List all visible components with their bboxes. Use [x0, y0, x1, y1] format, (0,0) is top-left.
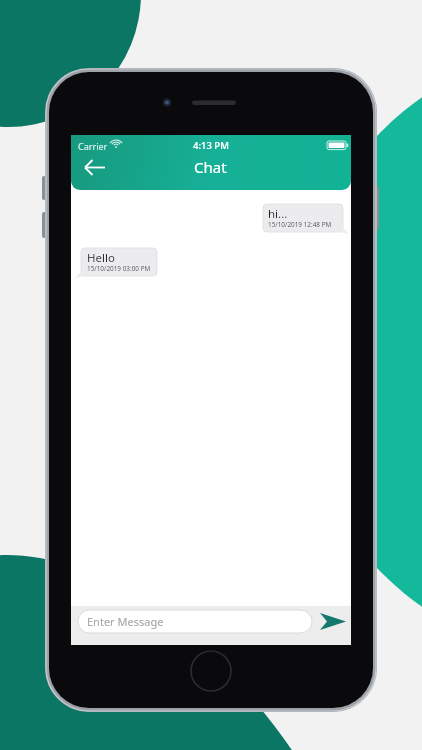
staticText: Carrier	[78, 140, 108, 152]
button[interactable]: Send	[314, 608, 350, 636]
staticText: hi...	[268, 206, 288, 222]
staticText: 15/10/2019 03:00 PM	[87, 264, 151, 273]
staticText: Enter Message	[87, 614, 164, 629]
staticText: Chat	[194, 157, 227, 177]
staticText: Hello	[87, 250, 115, 266]
staticText: 4:13 PM	[193, 139, 229, 152]
button[interactable]	[263, 204, 343, 232]
button[interactable]	[78, 608, 312, 635]
button[interactable]	[81, 248, 157, 276]
staticText: 15/10/2019 12:48 PM	[268, 220, 332, 229]
button[interactable]: Back	[82, 155, 108, 180]
